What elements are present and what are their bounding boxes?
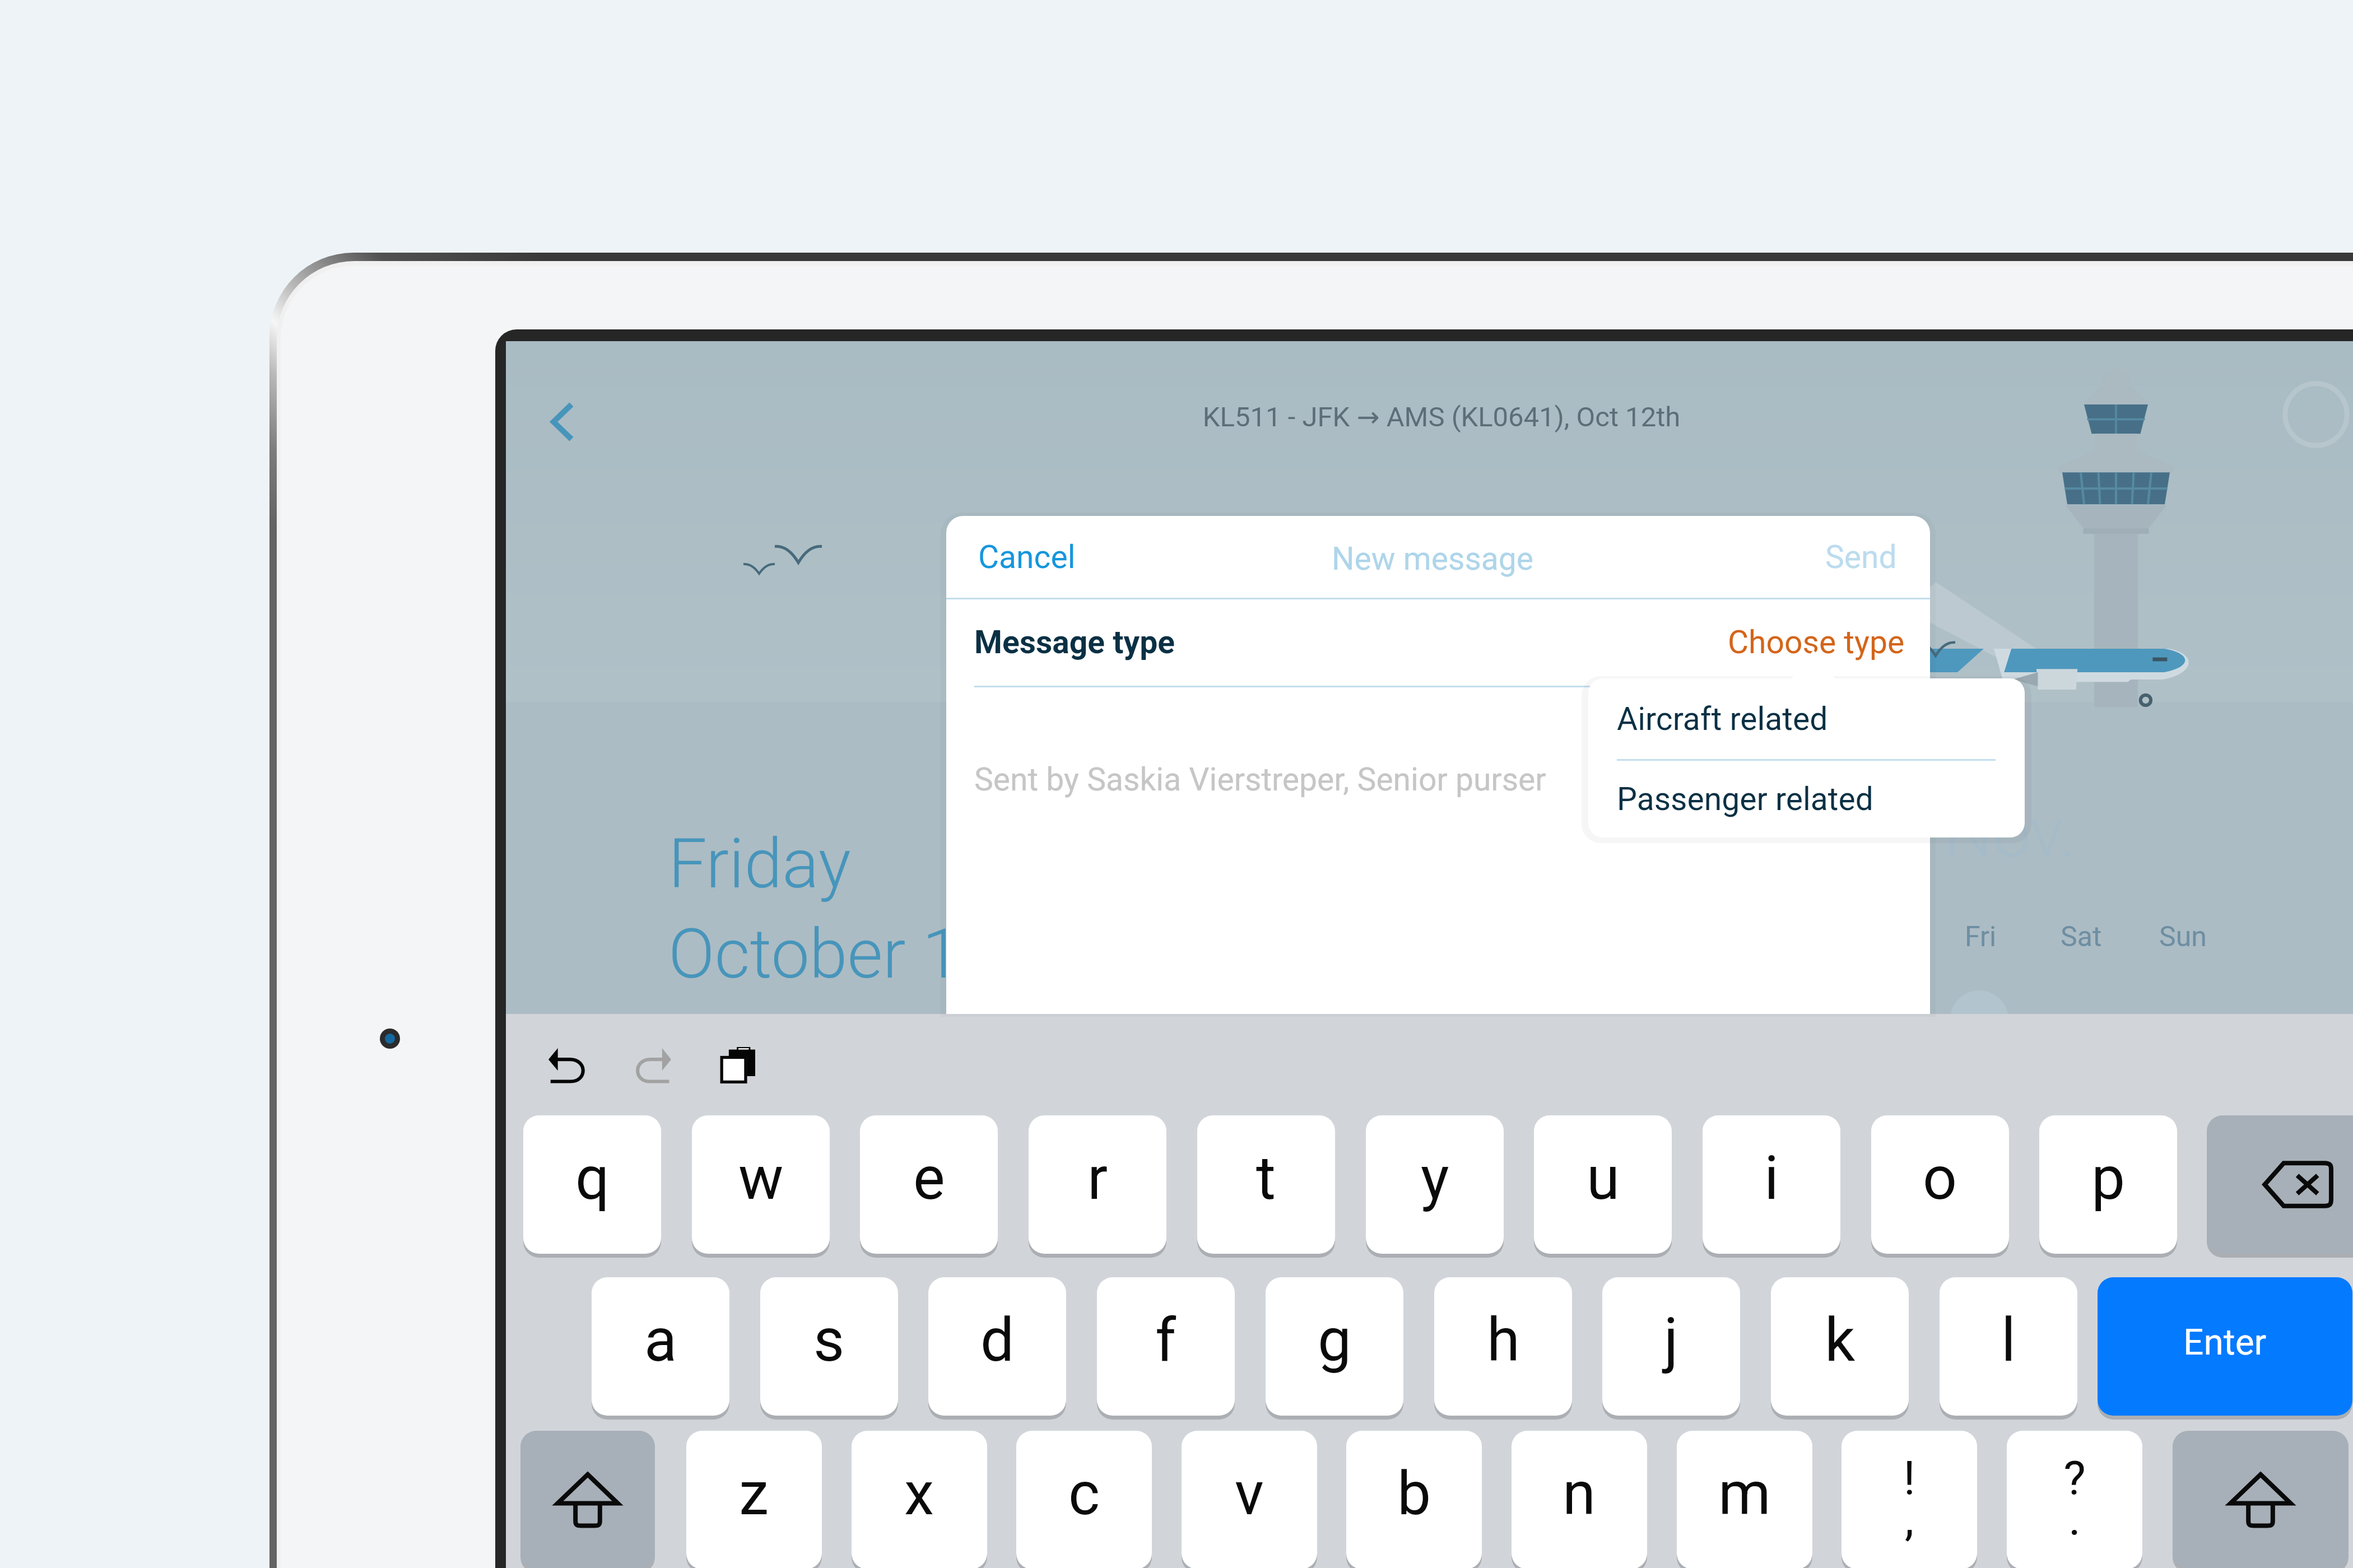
button[interactable]: Shift xyxy=(520,1431,655,1568)
button[interactable]: u xyxy=(1534,1115,1672,1254)
staticText: Send xyxy=(1825,538,1897,576)
button[interactable]: Backspace xyxy=(2207,1115,2353,1254)
button[interactable]: o xyxy=(1871,1115,2009,1254)
button[interactable]: Message type xyxy=(946,599,1930,686)
staticText: t xyxy=(1256,1143,1276,1213)
staticText: k xyxy=(1825,1305,1856,1375)
button[interactable]: a xyxy=(592,1277,729,1416)
staticText: u xyxy=(1587,1143,1620,1213)
staticText: . xyxy=(2007,1491,2142,1546)
staticText: Sent by Saskia Vierstreper, Senior purse… xyxy=(974,761,1546,798)
button[interactable]: Copy xyxy=(686,1015,791,1116)
staticText: Sat xyxy=(2061,920,2102,953)
button[interactable]: Back xyxy=(518,370,607,473)
button[interactable]: n xyxy=(1512,1431,1647,1568)
button[interactable]: e xyxy=(860,1115,998,1254)
button[interactable]: Shift xyxy=(2173,1431,2349,1568)
button[interactable]: ? xyxy=(2007,1431,2142,1568)
staticText: c xyxy=(1068,1459,1100,1529)
button[interactable]: b xyxy=(1346,1431,1482,1568)
button[interactable]: q xyxy=(523,1115,661,1254)
staticText: y xyxy=(1421,1143,1449,1213)
button[interactable]: Undo xyxy=(518,1015,624,1116)
button[interactable]: Send xyxy=(1755,520,1918,593)
staticText: w xyxy=(738,1143,784,1213)
button[interactable]: w xyxy=(692,1115,830,1254)
staticText: , xyxy=(1842,1491,1977,1546)
staticText: r xyxy=(1087,1143,1108,1213)
staticText: x xyxy=(904,1459,934,1529)
staticText: ? xyxy=(2007,1451,2142,1506)
staticText: Passenger related xyxy=(1617,780,1873,818)
staticText: o xyxy=(1923,1143,1957,1213)
staticText: b xyxy=(1397,1459,1431,1529)
staticText: a xyxy=(644,1305,677,1375)
button[interactable]: Cancel xyxy=(959,520,1121,593)
button[interactable]: Passenger related xyxy=(1588,761,2025,837)
button[interactable]: g xyxy=(1266,1277,1403,1416)
staticText: q xyxy=(575,1143,610,1213)
staticText: Sun xyxy=(2159,920,2207,953)
staticText: z xyxy=(739,1459,769,1529)
button[interactable]: i xyxy=(1703,1115,1840,1254)
button[interactable]: x xyxy=(852,1431,987,1568)
button[interactable]: s xyxy=(760,1277,898,1416)
button[interactable]: m xyxy=(1677,1431,1812,1568)
button[interactable]: j xyxy=(1602,1277,1740,1416)
staticText: n xyxy=(1563,1459,1596,1529)
button[interactable]: y xyxy=(1366,1115,1504,1254)
button[interactable]: Aircraft related xyxy=(1588,678,2025,759)
button[interactable]: ! xyxy=(1842,1431,1977,1568)
staticText: Aircraft related xyxy=(1617,700,1828,738)
button[interactable]: t xyxy=(1197,1115,1335,1254)
staticText: l xyxy=(2001,1305,2016,1375)
staticText: p xyxy=(2091,1143,2126,1213)
staticText: s xyxy=(813,1305,845,1375)
button[interactable]: l xyxy=(1940,1277,2077,1416)
staticText: October 1 xyxy=(668,914,960,994)
staticText: e xyxy=(913,1143,945,1213)
staticText: Message type xyxy=(974,624,1175,661)
staticText: KL511 - JFK → AMS (KL0641), Oct 12th xyxy=(489,401,2353,433)
button[interactable]: Enter xyxy=(2098,1277,2352,1416)
staticText: m xyxy=(1718,1459,1771,1529)
staticText: Choose type xyxy=(1728,624,1905,661)
staticText: h xyxy=(1487,1305,1520,1375)
staticText: i xyxy=(1764,1143,1779,1213)
button[interactable]: k xyxy=(1771,1277,1909,1416)
staticText: Fri xyxy=(1965,920,1997,953)
staticText: Enter xyxy=(2183,1322,2267,1364)
staticText: Friday xyxy=(668,824,851,904)
button[interactable]: f xyxy=(1097,1277,1235,1416)
staticText: j xyxy=(1664,1305,1678,1375)
staticText: f xyxy=(1155,1305,1176,1375)
staticText: Nov. xyxy=(1944,793,2076,873)
button[interactable]: Redo xyxy=(603,1015,708,1116)
button[interactable]: v xyxy=(1182,1431,1317,1568)
button[interactable]: p xyxy=(2039,1115,2177,1254)
button[interactable]: r xyxy=(1029,1115,1166,1254)
staticText: v xyxy=(1235,1459,1264,1529)
button[interactable]: d xyxy=(928,1277,1066,1416)
button[interactable]: h xyxy=(1434,1277,1572,1416)
staticText: g xyxy=(1318,1305,1352,1375)
button[interactable]: c xyxy=(1016,1431,1152,1568)
button[interactable]: z xyxy=(686,1431,822,1568)
staticText: ! xyxy=(1842,1451,1977,1506)
staticText: Cancel xyxy=(978,538,1076,576)
staticText: New message xyxy=(946,540,1924,578)
staticText: d xyxy=(980,1305,1015,1375)
